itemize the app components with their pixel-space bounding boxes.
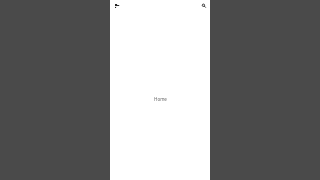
button[interactable]: Search xyxy=(199,1,208,10)
button[interactable]: Back xyxy=(112,1,121,10)
staticText: Home xyxy=(154,96,167,102)
